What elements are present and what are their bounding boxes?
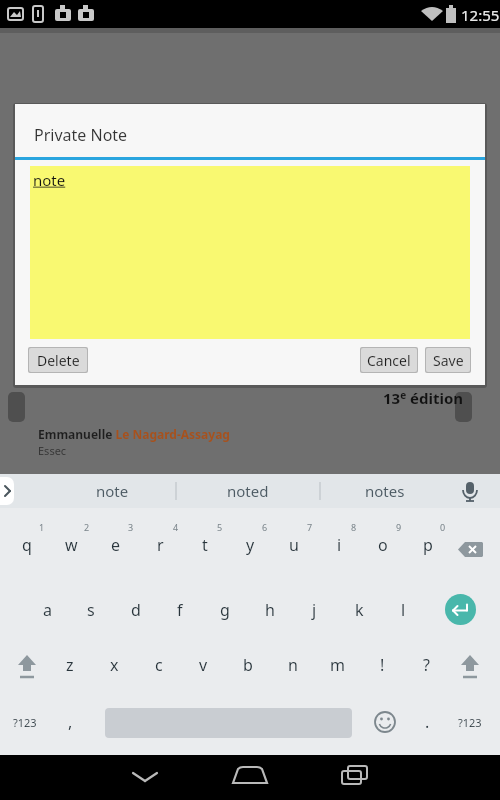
staticText: a (43, 599, 52, 621)
button[interactable]: o (363, 525, 403, 565)
button[interactable]: k (339, 590, 379, 630)
button[interactable] (0, 755, 166, 800)
button[interactable]: r (140, 525, 180, 565)
button[interactable]: noted (203, 474, 293, 508)
staticText: w (65, 534, 78, 556)
button[interactable]: i (319, 525, 359, 565)
staticText: . (425, 711, 430, 733)
staticText: z (66, 654, 74, 676)
staticText: b (243, 654, 253, 676)
staticText: p (423, 534, 433, 556)
button[interactable]: n (273, 645, 313, 685)
staticText: notes (365, 481, 405, 501)
staticText: t (202, 534, 208, 556)
staticText: m (330, 654, 345, 676)
button[interactable]: v (183, 645, 223, 685)
button[interactable]: , (50, 702, 90, 742)
button[interactable]: Delete (29, 348, 87, 372)
button[interactable]: u (274, 525, 314, 565)
staticText: ?123 (13, 715, 37, 730)
staticText: s (87, 599, 95, 621)
staticText: 3 (128, 521, 134, 533)
staticText: 7 (307, 521, 313, 533)
staticText: f (177, 599, 183, 621)
staticText: Save (433, 351, 464, 370)
button[interactable] (333, 755, 500, 800)
staticText: e (111, 534, 121, 556)
button[interactable]: t (185, 525, 225, 565)
button[interactable]: . (407, 702, 447, 742)
staticText: 0 (440, 521, 446, 533)
staticText: 1 (39, 521, 45, 533)
button[interactable]: ?123 (450, 702, 490, 742)
staticText: r (157, 534, 164, 556)
button[interactable]: z (50, 645, 90, 685)
button[interactable]: y (230, 525, 270, 565)
button[interactable]: g (205, 590, 245, 630)
staticText: Private Note (34, 124, 128, 146)
button[interactable]: ? (406, 645, 446, 685)
staticText: note (33, 170, 66, 190)
staticText: 12:55 (461, 5, 500, 25)
staticText: i (337, 534, 342, 556)
staticText: Delete (37, 351, 80, 370)
button[interactable] (445, 594, 476, 625)
button[interactable]: ?123 (5, 702, 45, 742)
staticText: 9 (396, 521, 402, 533)
button[interactable]: j (294, 590, 334, 630)
staticText: v (199, 654, 208, 676)
staticText: l (401, 599, 406, 621)
staticText: 4 (173, 521, 179, 533)
staticText: g (220, 599, 230, 621)
staticText: ! (380, 654, 385, 676)
staticText: 5 (217, 521, 223, 533)
button[interactable]: notes (340, 474, 430, 508)
button[interactable]: f (160, 590, 200, 630)
staticText: Essec (38, 443, 67, 458)
staticText: d (131, 599, 141, 621)
button[interactable]: w (51, 525, 91, 565)
staticText: n (288, 654, 298, 676)
button[interactable]: note (67, 474, 157, 508)
staticText: x (110, 654, 119, 676)
staticText: Emmanuelle Le Nagard-Assayag (38, 426, 230, 442)
button[interactable] (0, 477, 14, 505)
staticText: Cancel (367, 351, 411, 370)
staticText: note (96, 481, 129, 501)
staticText: 8 (351, 521, 357, 533)
button[interactable]: ! (362, 645, 402, 685)
button[interactable]: h (250, 590, 290, 630)
staticText: 6 (262, 521, 268, 533)
button[interactable]: b (228, 645, 268, 685)
staticText: h (265, 599, 275, 621)
staticText: y (246, 534, 255, 556)
button[interactable]: Save (426, 348, 470, 372)
staticText: u (289, 534, 299, 556)
button[interactable]: p (408, 525, 448, 565)
button[interactable]: e (96, 525, 136, 565)
button[interactable]: Cancel (361, 348, 417, 372)
staticText: 13e édition (383, 388, 464, 408)
button[interactable] (166, 755, 333, 800)
staticText: j (312, 599, 317, 621)
button[interactable]: c (139, 645, 179, 685)
staticText: , (68, 711, 73, 733)
button[interactable]: a (27, 590, 67, 630)
staticText: c (155, 654, 163, 676)
staticText: ? (423, 654, 430, 676)
staticText: q (22, 534, 32, 556)
staticText: k (355, 599, 364, 621)
button[interactable]: l (383, 590, 423, 630)
staticText: ?123 (458, 715, 482, 730)
staticText: noted (227, 481, 269, 501)
button[interactable]: x (94, 645, 134, 685)
button[interactable]: s (71, 590, 111, 630)
button[interactable]: q (7, 525, 47, 565)
staticText: o (378, 534, 388, 556)
button[interactable]: note (30, 166, 470, 339)
button[interactable]: d (116, 590, 156, 630)
staticText: 2 (84, 521, 90, 533)
button[interactable]: m (317, 645, 357, 685)
